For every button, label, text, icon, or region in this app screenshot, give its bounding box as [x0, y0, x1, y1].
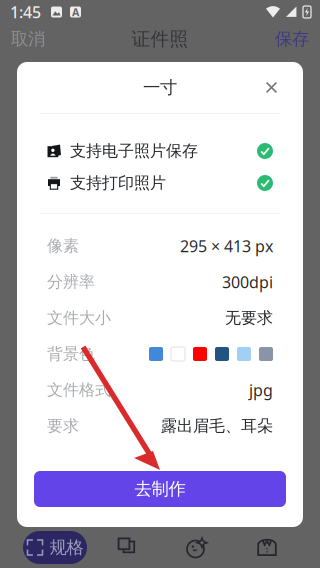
staticText: jpg — [249, 379, 273, 401]
staticText: 无要求 — [225, 308, 273, 328]
button[interactable]: 规格 — [23, 531, 87, 564]
staticText: 295 × 413 px — [180, 235, 273, 257]
staticText: 露出眉毛、耳朵 — [161, 416, 273, 436]
button[interactable]: Clothing — [242, 531, 292, 564]
staticText: 支持打印照片 — [70, 173, 166, 193]
staticText: 一寸 — [143, 77, 177, 98]
button[interactable]: Close — [256, 72, 287, 103]
staticText: 文件格式 — [47, 380, 111, 400]
staticText: 支持电子照片保存 — [70, 141, 198, 161]
button[interactable]: 取消 — [0, 24, 56, 54]
staticText: 要求 — [47, 416, 79, 436]
button[interactable]: 去制作 — [34, 471, 286, 507]
staticText: 1:45 — [10, 1, 41, 23]
staticText: 像素 — [47, 236, 79, 256]
staticText: 去制作 — [134, 478, 185, 500]
button[interactable]: 保存 — [264, 24, 320, 54]
button[interactable]: Beautify — [172, 531, 222, 564]
staticText: 文件大小 — [47, 308, 111, 328]
staticText: 保存 — [275, 28, 309, 50]
staticText: 背景色 — [47, 344, 95, 364]
staticText: A — [72, 5, 79, 19]
button[interactable]: Templates — [102, 531, 152, 564]
staticText: 分辨率 — [47, 272, 95, 292]
staticText: 300dpi — [222, 271, 273, 293]
staticText: 取消 — [11, 28, 45, 50]
staticText: 证件照 — [131, 27, 188, 50]
staticText: 规格 — [49, 537, 83, 558]
